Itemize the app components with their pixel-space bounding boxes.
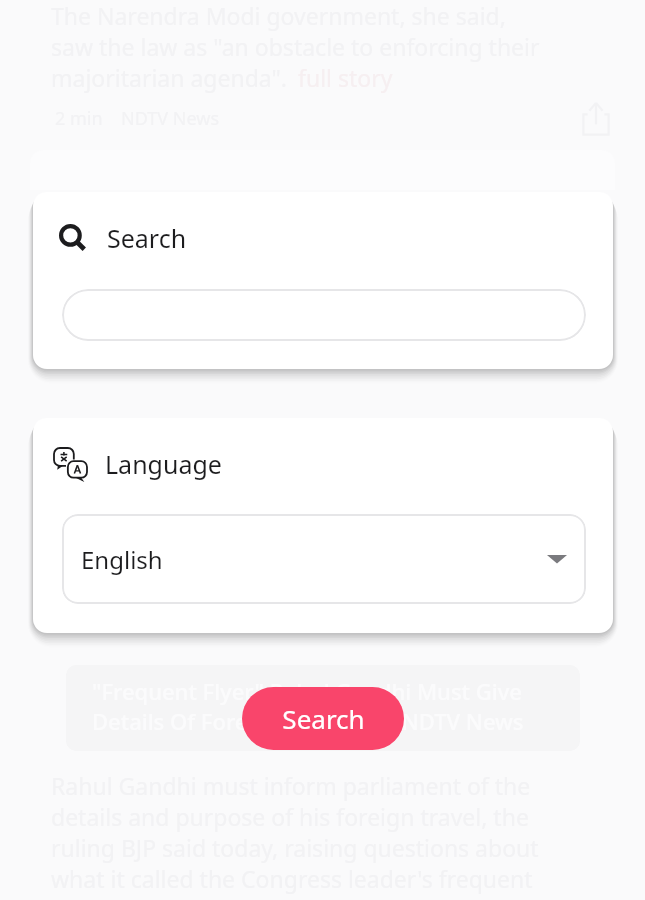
staticText: full story	[298, 62, 393, 93]
button[interactable]: English	[62, 514, 586, 604]
staticText: Details Of Foreign Trips: BJP - NDTV New…	[92, 706, 524, 736]
staticText: "Frequent Flyer" Rahul Gandhi Must Give	[92, 676, 522, 706]
button[interactable]	[62, 289, 586, 341]
staticText: English	[81, 543, 163, 576]
button[interactable]: Search	[242, 687, 404, 750]
staticText: Language	[105, 447, 222, 481]
staticText: Search	[107, 221, 187, 255]
staticText: Search	[282, 701, 365, 736]
